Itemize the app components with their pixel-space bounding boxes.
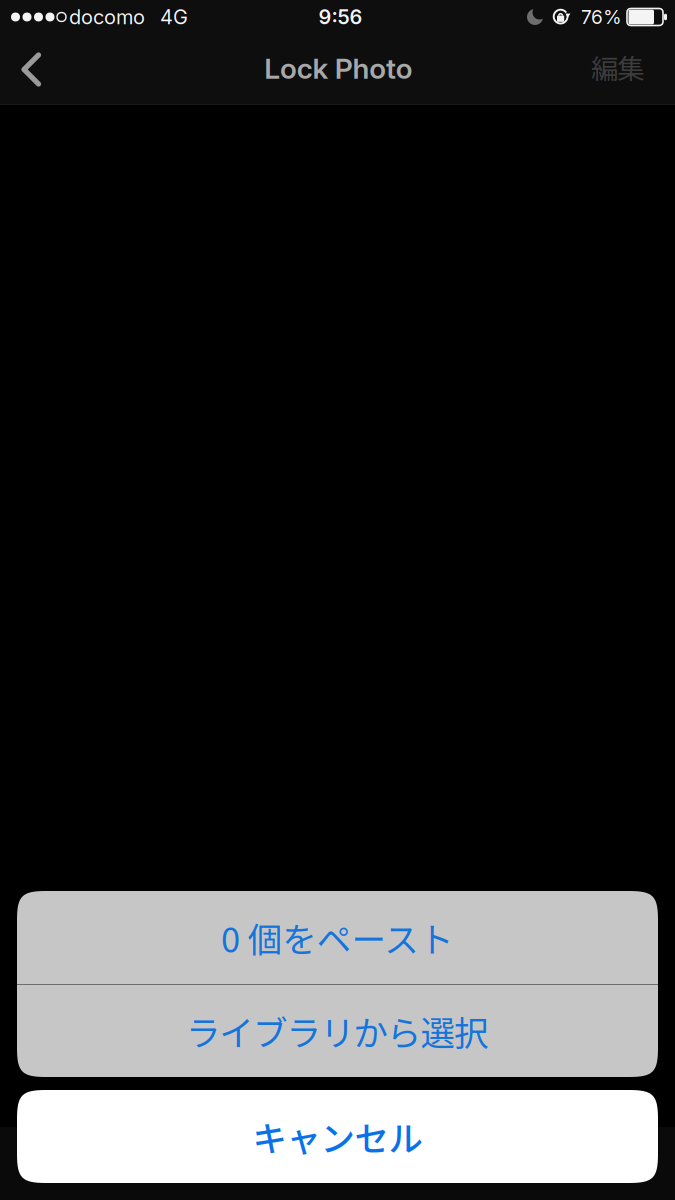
staticText: 0 個をペースト [221, 912, 454, 962]
button[interactable]: 0 個をペースト [17, 891, 658, 984]
button[interactable]: Back [0, 40, 65, 104]
staticText: docomo [69, 5, 145, 29]
button[interactable]: 編集 [591, 40, 675, 104]
staticText: 76% [581, 5, 622, 29]
staticText: 9:56 [318, 5, 362, 29]
button[interactable]: ライブラリから選択 [17, 985, 658, 1077]
staticText: 4G [160, 5, 188, 29]
staticText: Lock Photo [264, 51, 413, 86]
staticText: キャンセル [252, 1112, 422, 1161]
button[interactable]: キャンセル [17, 1090, 658, 1183]
staticText: 編集 [591, 47, 644, 87]
staticText: ライブラリから選択 [186, 1006, 489, 1056]
